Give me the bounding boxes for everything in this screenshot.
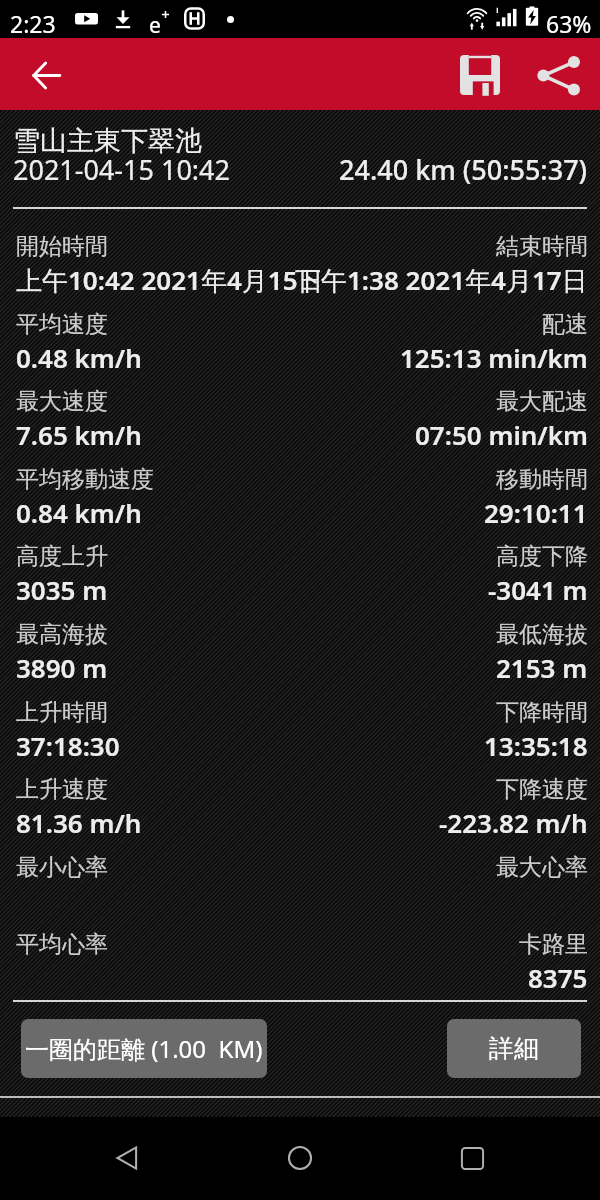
button[interactable]: 一圈的距離 (1.00 KM) [21,1019,267,1078]
staticText: 最小心率 [16,853,108,882]
staticText: 卡路里 [519,930,588,959]
staticText: 29:10:11 [484,495,588,530]
button[interactable]: 詳細 [447,1019,581,1078]
staticText: 24.40 km (50:55:37) [339,151,588,188]
staticText: 下降速度 [496,775,588,804]
staticText: 下午1:38 2021年4月17日 [295,262,588,298]
staticText: 81.36 m/h [16,805,142,840]
staticText: 07:50 min/km [415,417,588,452]
staticText: 上升時間 [16,698,108,727]
staticText: 高度下降 [496,542,588,571]
staticText: 3035 m [16,572,108,607]
staticText: 13:35:18 [484,728,588,763]
staticText: 0.84 km/h [16,495,142,530]
button[interactable]: Save [447,42,513,108]
button[interactable]: Home [265,1123,335,1193]
staticText: 上升速度 [16,775,108,804]
staticText: 移動時間 [496,465,588,494]
staticText: 最低海拔 [496,620,588,649]
staticText: 平均速度 [16,310,108,339]
staticText: 2021-04-15 10:42 [13,151,230,188]
staticText: 8375 [528,960,588,995]
staticText: 63% [546,8,592,39]
staticText: 0.48 km/h [16,340,142,375]
button[interactable]: Share [526,45,592,111]
staticText: 詳細 [489,1033,539,1064]
staticText: 高度上升 [16,542,108,571]
staticText: 37:18:30 [16,728,120,763]
staticText: -3041 m [488,572,588,607]
staticText: 3890 m [16,650,108,685]
staticText: 雪山主東下翠池 [13,124,202,158]
staticText: 2:23 [10,8,56,39]
staticText: 一圈的距離 (1.00 KM) [25,1032,263,1065]
staticText: e [149,11,161,40]
button[interactable]: Recents [437,1123,507,1193]
staticText: 最大心率 [496,853,588,882]
staticText: 開始時間 [16,232,108,261]
staticText: 最大速度 [16,387,108,416]
staticText: 最高海拔 [16,620,108,649]
staticText: 平均心率 [16,930,108,959]
staticText: 7.65 km/h [16,417,142,452]
staticText: 下降時間 [496,698,588,727]
staticText: 最大配速 [496,387,588,416]
staticText: 上午10:42 2021年4月15日 [16,262,324,298]
button[interactable]: Back [92,1123,162,1193]
staticText: 配速 [542,310,588,339]
staticText: 結束時間 [496,232,588,261]
staticText: 平均移動速度 [16,465,154,494]
staticText: 2153 m [496,650,588,685]
staticText: 125:13 min/km [400,340,588,375]
button[interactable]: Back [13,42,79,108]
staticText: -223.82 m/h [439,805,588,840]
